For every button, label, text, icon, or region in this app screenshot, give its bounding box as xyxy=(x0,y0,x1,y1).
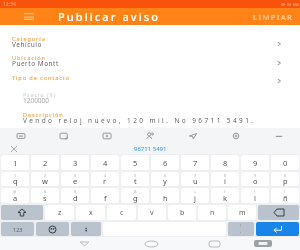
button[interactable]: 5 xyxy=(121,172,149,186)
staticText: ) xyxy=(254,189,256,194)
button[interactable]: Period xyxy=(228,222,254,236)
button[interactable]: / xyxy=(271,188,299,203)
button[interactable]: Menu xyxy=(0,8,58,25)
button[interactable]: 4 xyxy=(91,155,119,170)
button[interactable]: Emoji xyxy=(128,128,171,143)
staticText: $ xyxy=(74,189,77,194)
button[interactable]: 8 xyxy=(211,172,239,186)
staticText: d xyxy=(73,193,78,203)
button[interactable]: Home xyxy=(141,237,161,250)
staticText: 9 xyxy=(253,158,258,168)
button[interactable]: Back xyxy=(74,237,94,250)
staticText: . xyxy=(240,228,242,235)
button[interactable]: v xyxy=(138,205,166,220)
staticText: / xyxy=(284,189,286,194)
staticText: i xyxy=(224,176,226,186)
button[interactable]: Clipboard suggestion xyxy=(10,145,18,153)
button[interactable]: - xyxy=(151,188,179,203)
staticText: Publicar aviso xyxy=(58,9,161,24)
staticText: 8 xyxy=(224,173,227,178)
button[interactable]: 4 xyxy=(91,172,119,186)
button[interactable]: Categoría xyxy=(0,34,300,53)
button[interactable]: c xyxy=(107,205,136,220)
staticText: l xyxy=(254,193,256,203)
staticText: 2 xyxy=(43,158,48,168)
staticText: q xyxy=(13,176,18,186)
button[interactable]: More xyxy=(257,128,300,143)
button[interactable]: 6 xyxy=(151,172,179,186)
staticText: 9 xyxy=(254,173,257,178)
button[interactable]: 2 xyxy=(31,155,59,170)
button[interactable]: 7 xyxy=(181,172,209,186)
button[interactable]: Shift xyxy=(1,205,43,220)
button[interactable]: 96711 5491 xyxy=(134,145,167,153)
staticText: b xyxy=(180,208,185,218)
staticText: Precio ($) xyxy=(23,91,57,99)
staticText: 2 xyxy=(44,173,47,178)
button[interactable]: 9 xyxy=(241,172,269,186)
button[interactable]: Symbols xyxy=(71,222,101,236)
button[interactable]: b xyxy=(168,205,196,220)
staticText: Tipo de contacto xyxy=(12,74,71,82)
button[interactable]: ) xyxy=(241,188,269,203)
button[interactable]: 2 xyxy=(31,172,59,186)
staticText: @ xyxy=(13,189,17,194)
button[interactable]: Tipo de contacto xyxy=(0,72,300,91)
button[interactable]: 0 xyxy=(271,172,299,186)
staticText: Ubicación xyxy=(12,54,46,62)
staticText: 1200000 xyxy=(23,96,50,105)
button[interactable]: Send xyxy=(171,128,214,143)
button[interactable]: x xyxy=(76,205,105,220)
button[interactable]: @ xyxy=(1,188,29,203)
button[interactable]: $ xyxy=(61,188,89,203)
staticText: & xyxy=(134,189,137,194)
button[interactable]: Clipboard xyxy=(0,128,42,143)
button[interactable]: _ xyxy=(91,188,119,203)
staticText: 1 xyxy=(13,158,18,168)
button[interactable]: z xyxy=(45,205,74,220)
button[interactable]: 3 xyxy=(61,172,89,186)
button[interactable]: Change keyboard xyxy=(253,237,273,250)
staticText: 0 xyxy=(283,158,288,168)
staticText: a xyxy=(13,193,18,203)
button[interactable]: ( xyxy=(211,188,239,203)
staticText: c xyxy=(120,208,124,218)
button[interactable]: m xyxy=(228,205,256,220)
button[interactable]: Stickers xyxy=(42,128,85,143)
button[interactable]: Enter xyxy=(256,222,299,236)
button[interactable]: Backspace xyxy=(258,205,299,220)
button[interactable]: 9 xyxy=(241,155,269,170)
button[interactable]: + xyxy=(181,188,209,203)
button[interactable]: 1 xyxy=(1,155,29,170)
staticText: 12:34 xyxy=(3,1,16,8)
staticText: r xyxy=(103,176,107,186)
button[interactable]: Settings xyxy=(214,128,257,143)
button[interactable]: 123 xyxy=(1,222,34,236)
staticText: ▲ xyxy=(85,226,88,229)
button[interactable]: Ubicación xyxy=(0,53,300,72)
button[interactable]: LIMPIAR xyxy=(245,8,300,25)
staticText: g xyxy=(133,193,138,203)
button[interactable]: # xyxy=(31,188,59,203)
button[interactable]: 0 xyxy=(271,155,299,170)
button[interactable]: 6 xyxy=(151,155,179,170)
button[interactable]: GIF xyxy=(85,128,128,143)
staticText: _ xyxy=(104,189,106,194)
button[interactable]: 3 xyxy=(61,155,89,170)
button[interactable]: Emoji xyxy=(36,222,69,236)
button[interactable]: & xyxy=(121,188,149,203)
button[interactable]: 8 xyxy=(211,155,239,170)
staticText: - xyxy=(164,189,166,194)
button[interactable]: Recents xyxy=(204,237,224,250)
staticText: 3 xyxy=(74,173,77,178)
staticText: p xyxy=(283,176,288,186)
button[interactable]: 7 xyxy=(181,155,209,170)
staticText: v xyxy=(150,208,154,218)
button[interactable]: 1 xyxy=(1,172,29,186)
staticText: 4 xyxy=(104,173,107,178)
staticText: x xyxy=(89,208,93,218)
button[interactable]: 5 xyxy=(121,155,149,170)
button[interactable]: n xyxy=(198,205,226,220)
staticText: 8 xyxy=(223,158,228,168)
